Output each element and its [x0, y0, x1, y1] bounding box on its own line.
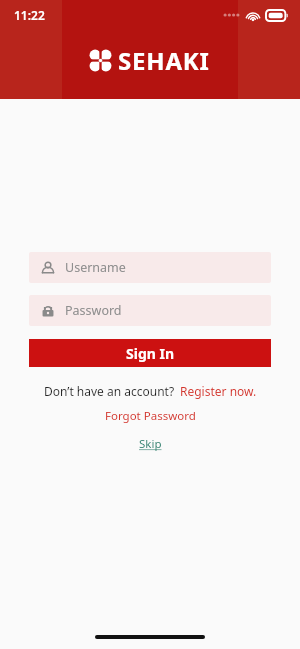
- staticText: Password: [65, 302, 122, 319]
- staticText: Sign In: [126, 344, 175, 363]
- staticText: Forgot Password: [105, 408, 196, 424]
- button[interactable]: Register now.: [180, 383, 257, 399]
- button[interactable]: Skip: [135, 435, 166, 453]
- button[interactable]: Forgot Password: [101, 407, 200, 425]
- staticText: 11:22: [14, 7, 45, 23]
- staticText: SEHAKI: [118, 44, 210, 77]
- staticText: Don’t have an account?: [44, 383, 175, 399]
- button[interactable]: Sign In: [29, 339, 271, 367]
- staticText: Register now.: [180, 383, 257, 399]
- button[interactable]: Password: [29, 295, 271, 326]
- staticText: Skip: [139, 436, 162, 452]
- button[interactable]: Username: [29, 252, 271, 283]
- staticText: Username: [65, 259, 126, 276]
